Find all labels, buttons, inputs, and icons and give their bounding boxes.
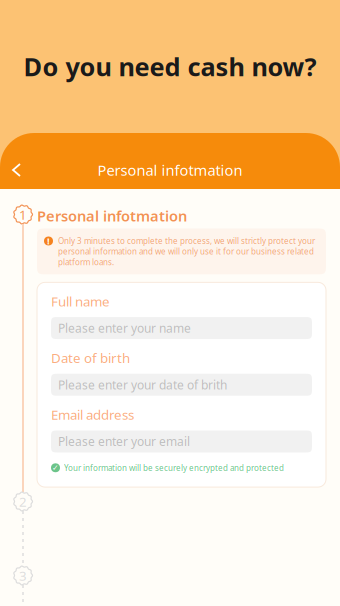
staticText: Only 3 minutes to complete the process, …: [58, 235, 315, 267]
staticText: Please enter your name: [58, 320, 191, 336]
staticText: Personal infotmation: [37, 206, 187, 225]
staticText: Full name: [51, 292, 110, 310]
staticText: Do you need cash now?: [23, 50, 316, 83]
staticText: Email address: [51, 406, 134, 423]
staticText: 3: [19, 567, 27, 584]
staticText: Please enter your date of brith: [58, 377, 227, 393]
staticText: 1: [19, 206, 27, 223]
button[interactable]: Back: [0, 158, 34, 182]
staticText: Please enter your email: [58, 433, 190, 449]
staticText: Personal infotmation: [97, 160, 242, 180]
staticText: Date of birth: [51, 349, 130, 367]
staticText: 2: [19, 493, 27, 510]
staticText: !: [47, 235, 50, 247]
staticText: ✓: [52, 463, 59, 472]
staticText: Your information will be securely encryp…: [64, 462, 284, 473]
